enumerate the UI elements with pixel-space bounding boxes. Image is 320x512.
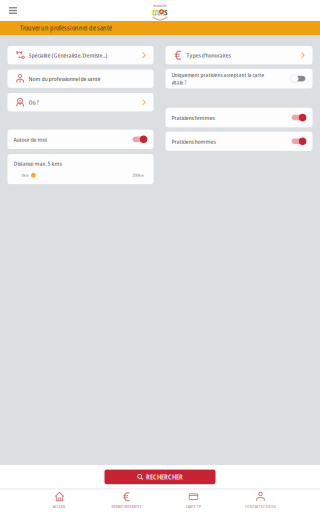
staticText: Trouver un professionnel de santé — [20, 23, 112, 33]
staticText: Types d'honoraires — [186, 51, 230, 59]
button[interactable]: Praticiens hommes — [165, 132, 312, 151]
staticText: Nom du professionnel de santé — [28, 74, 100, 83]
staticText: Où ? — [28, 98, 38, 106]
button[interactable]: Où ? — [7, 93, 153, 111]
button[interactable]: Nom du professionnel de santé — [7, 69, 153, 88]
staticText: Uniquement praticiens acceptant la carte… — [171, 71, 264, 86]
button[interactable]: Menu — [4, 1, 22, 19]
staticText: s — [164, 6, 168, 18]
staticText: mon offre santé — [152, 13, 167, 17]
staticText: 0km — [21, 172, 28, 178]
staticText: € — [123, 488, 130, 505]
staticText: Distance max. 5 kms — [13, 159, 61, 167]
staticText: Autour de moi — [13, 135, 46, 143]
button[interactable]: Autour de moi — [7, 130, 153, 149]
staticText: REMBOURSEMENT — [111, 504, 141, 509]
button[interactable]: RECHERCHER — [104, 470, 215, 484]
staticText: CONTACTEZ-NOUS — [245, 504, 276, 509]
staticText: Spécialité (Généraliste, Dentiste...) — [28, 51, 107, 59]
button[interactable]: CONTACTEZ-NOUS — [227, 489, 294, 512]
button[interactable]: CARTE TP — [160, 489, 227, 512]
button[interactable]: Praticiens femmes — [165, 108, 312, 127]
button[interactable]: € — [165, 46, 312, 64]
staticText: mutuelle — [153, 3, 167, 8]
staticText: Praticiens hommes — [171, 137, 215, 145]
staticText: Praticiens femmes — [171, 113, 214, 122]
staticText: m — [152, 6, 159, 18]
staticText: € — [175, 47, 182, 63]
button[interactable]: Uniquement praticiens acceptant la carte… — [165, 69, 312, 88]
staticText: RECHERCHER — [146, 472, 183, 481]
button[interactable]: Spécialité (Généraliste, Dentiste...) — [7, 46, 153, 64]
button[interactable]: € — [93, 489, 160, 512]
staticText: ACCUEIL — [53, 504, 66, 509]
button[interactable]: ACCUEIL — [26, 489, 93, 512]
staticText: 200km — [132, 172, 143, 178]
staticText: CARTE TP — [186, 504, 201, 509]
